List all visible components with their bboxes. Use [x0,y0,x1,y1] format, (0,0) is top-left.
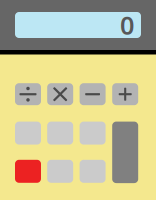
button[interactable]: Multiply [47,83,73,105]
button[interactable]: Clear [15,160,41,183]
button[interactable]: Five [80,160,106,183]
button[interactable]: Add [112,83,138,105]
button[interactable]: Seven [15,122,41,145]
button[interactable]: Nine [80,122,106,145]
button[interactable]: Eight [47,122,73,145]
button[interactable]: Four [47,160,73,183]
button[interactable]: Equals [112,122,138,183]
button[interactable]: Subtract [80,83,106,105]
staticText: 0 [120,8,134,42]
button[interactable]: Divide [15,83,41,105]
